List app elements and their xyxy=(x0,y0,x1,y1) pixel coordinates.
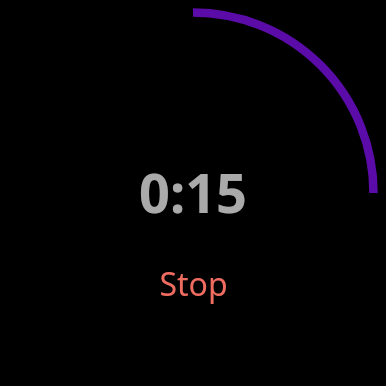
staticText: Stop xyxy=(159,262,228,306)
button[interactable]: Stop xyxy=(159,262,228,306)
staticText: 0:15 xyxy=(139,155,247,229)
other: Timer progress xyxy=(0,0,386,386)
